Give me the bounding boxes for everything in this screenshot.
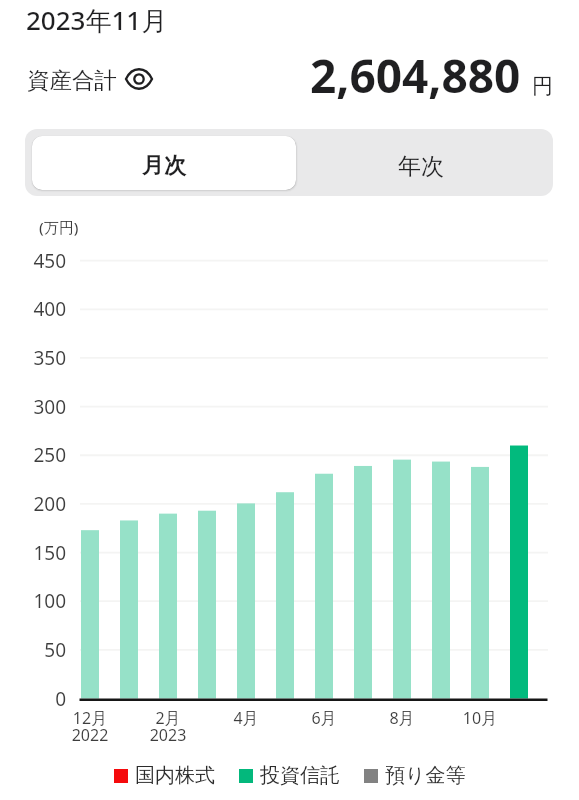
button[interactable]: 国内株式 xyxy=(114,763,215,789)
staticText: 250 xyxy=(8,442,66,468)
staticText: 0 xyxy=(8,686,66,712)
staticText: 12月 2022 xyxy=(55,707,125,745)
staticText: 国内株式 xyxy=(135,763,215,788)
staticText: 預り金等 xyxy=(385,763,466,788)
staticText: 2月 2023 xyxy=(133,707,203,745)
staticText: 資産合計 xyxy=(27,66,117,94)
staticText: 2023年11月 xyxy=(26,2,168,38)
staticText: 350 xyxy=(8,345,66,371)
staticText: 2,604,880 xyxy=(310,44,521,107)
staticText: 300 xyxy=(8,394,66,420)
button[interactable]: 月次 xyxy=(32,136,296,190)
staticText: 4月 xyxy=(211,707,281,729)
staticText: (万円) xyxy=(39,217,79,237)
staticText: 円 xyxy=(532,73,553,99)
button[interactable]: 投資信託 xyxy=(239,763,340,789)
staticText: 月次 xyxy=(142,152,186,180)
staticText: 400 xyxy=(8,296,66,322)
staticText: 50 xyxy=(8,637,66,663)
staticText: 200 xyxy=(8,491,66,517)
staticText: 8月 xyxy=(367,707,437,729)
staticText: 6月 xyxy=(289,707,359,729)
staticText: 投資信託 xyxy=(260,763,340,788)
staticText: 年次 xyxy=(398,152,444,181)
button[interactable]: 資産合計の表示を切り替え xyxy=(124,64,154,94)
staticText: 100 xyxy=(8,588,66,614)
staticText: 10月 xyxy=(445,707,515,729)
button[interactable]: 預り金等 xyxy=(364,763,466,789)
button[interactable]: 年次 xyxy=(296,136,545,190)
staticText: 450 xyxy=(8,248,66,274)
staticText: 150 xyxy=(8,540,66,566)
